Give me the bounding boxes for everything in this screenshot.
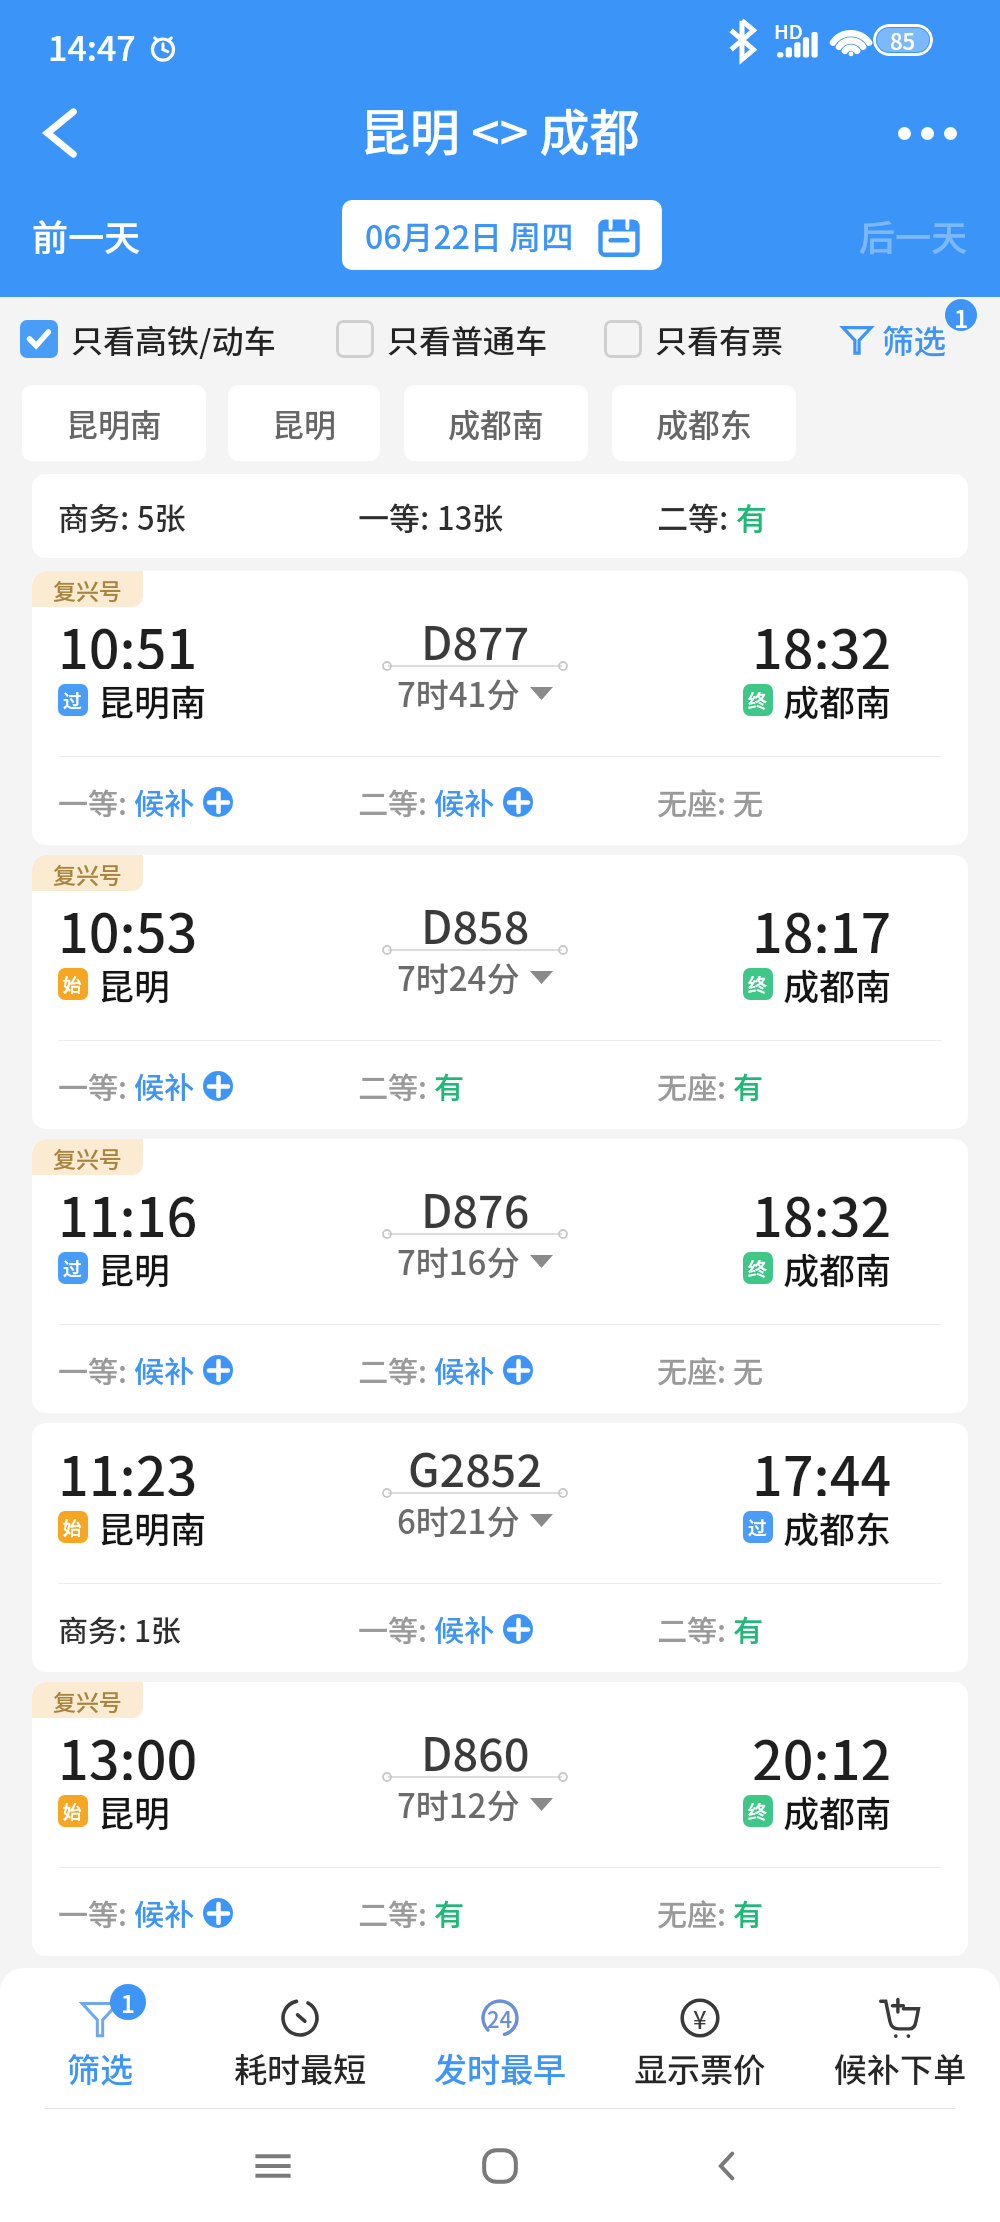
staticText: D860 [421,1719,530,1784]
staticText: 候补 [434,1348,494,1391]
staticText: 候补 [134,1348,194,1391]
staticText: 有 [733,1891,763,1934]
staticText: 显示票价 [634,2044,766,2092]
staticText: 后一天 [859,209,968,261]
staticText: 一等: [58,1348,134,1391]
staticText: 成都南 [783,1785,892,1837]
button[interactable]: 1 [0,1968,200,2108]
button[interactable]: 复兴号 [32,1682,968,1956]
staticText: D858 [421,892,530,957]
button[interactable]: 11:23 [32,1423,968,1672]
staticText: 10:53 [58,891,198,953]
staticText: G2852 [408,1435,543,1500]
staticText: 无座: [657,1348,733,1391]
staticText: 只看高铁/动车 [71,316,276,362]
staticText: 7时24分 [397,953,520,1001]
staticText: 筛选 [67,2044,133,2092]
staticText: 始 [63,1513,83,1541]
staticText: 13:00 [58,1718,198,1780]
staticText: 无座: [657,780,733,823]
staticText: 二等: [358,780,434,823]
staticText: 复兴号 [53,1141,122,1174]
staticText: 二等: [657,1607,733,1650]
staticText: 一等: [58,780,134,823]
button[interactable]: 昆明 [228,385,380,461]
staticText: 始 [63,1797,83,1825]
button[interactable]: 只看高铁/动车 [20,297,276,381]
staticText: D877 [421,608,530,673]
staticText: 14:47 [48,22,136,71]
button[interactable]: 只看普通车 [336,297,548,381]
button[interactable]: 商务: [32,474,968,558]
staticText: 85 [890,24,916,56]
button[interactable]: Back [14,88,104,178]
staticText: D876 [421,1176,530,1241]
staticText: 昆明南 [66,400,163,446]
button[interactable]: 耗时最短 [200,1968,400,2108]
button[interactable]: 复兴号 [32,1139,968,1413]
staticText: 过 [63,686,83,714]
staticText: 昆明 <> 成都 [360,93,640,165]
staticText: 有 [736,494,767,539]
staticText: 候补 [134,1064,194,1107]
button[interactable]: More options [872,88,982,178]
staticText: 有 [434,1064,464,1107]
button[interactable]: 复兴号 [32,571,968,845]
staticText: 成都东 [783,1501,892,1553]
staticText: 无座: [657,1064,733,1107]
staticText: 13张 [437,494,504,539]
staticText: 只看有票 [655,316,784,362]
staticText: 成都南 [783,958,892,1010]
staticText: 5张 [137,494,186,539]
staticText: 无座: [657,1891,733,1934]
staticText: 18:32 [752,607,892,669]
button[interactable]: 候补下单 [800,1968,1000,2108]
staticText: 候补 [434,1607,494,1650]
staticText: 6时21分 [397,1496,520,1544]
staticText: 1张 [134,1607,182,1650]
staticText: 10:51 [58,607,198,669]
staticText: 昆明 [98,1785,171,1837]
staticText: 有 [733,1064,763,1107]
staticText: 昆明南 [98,1501,207,1553]
staticText: 商务: [58,494,137,539]
button[interactable]: 前一天 [12,195,212,275]
staticText: 二等: [657,494,736,539]
staticText: 一等: [58,1064,134,1107]
button[interactable]: 只看有票 [604,297,784,381]
button[interactable]: 后一天 [790,195,990,275]
staticText: 7时41分 [397,669,520,717]
button[interactable]: 成都南 [404,385,588,461]
staticText: 1 [954,299,969,331]
button[interactable]: 复兴号 [32,855,968,1129]
staticText: 耗时最短 [234,2044,366,2092]
staticText: 前一天 [32,209,141,261]
staticText: 候补 [434,780,494,823]
staticText: 昆明 [98,958,171,1010]
button[interactable]: 成都东 [612,385,796,461]
staticText: 终 [748,970,768,998]
staticText: 一等: [358,494,437,539]
staticText: 过 [63,1254,83,1282]
staticText: 1 [121,1985,135,2020]
staticText: 成都东 [656,400,753,446]
staticText: 18:32 [752,1175,892,1237]
staticText: 成都南 [448,400,545,446]
staticText: 昆明 [98,1242,171,1294]
staticText: 7时16分 [397,1237,520,1285]
button[interactable]: 24 [400,1968,600,2108]
staticText: 复兴号 [53,1684,122,1717]
button[interactable]: 06月22日 周四 [342,200,662,270]
staticText: 只看普通车 [387,316,548,362]
staticText: 成都南 [783,674,892,726]
staticText: 过 [748,1513,768,1541]
button[interactable]: 筛选 [842,297,947,381]
button[interactable]: 昆明南 [22,385,206,461]
button[interactable]: ¥ [600,1968,800,2108]
staticText: 无 [733,780,763,823]
staticText: 17:44 [752,1434,892,1496]
staticText: 候补 [134,780,194,823]
staticText: 20:12 [752,1718,892,1780]
staticText: 筛选 [882,316,947,362]
staticText: 成都南 [783,1242,892,1294]
